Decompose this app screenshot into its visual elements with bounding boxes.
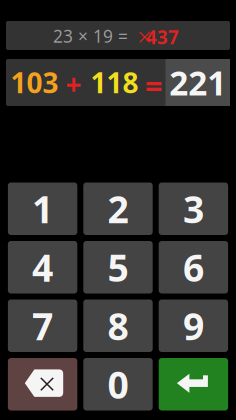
staticText: +	[65, 65, 81, 103]
button[interactable]: Delete	[8, 358, 77, 410]
button[interactable]: 4	[8, 241, 77, 293]
button[interactable]: 7	[8, 299, 77, 352]
staticText: 5	[107, 242, 128, 292]
button[interactable]: 0	[83, 358, 153, 410]
staticText: =	[145, 65, 163, 105]
staticText: 8	[107, 301, 128, 351]
staticText: 4	[32, 242, 53, 292]
staticText: 23 × 19 =	[53, 24, 128, 47]
button[interactable]: Enter	[159, 358, 228, 410]
staticText: 1	[32, 184, 53, 234]
button[interactable]: 3	[159, 182, 228, 235]
staticText: 118	[90, 64, 138, 101]
button[interactable]: 9	[159, 299, 228, 352]
staticText: 7	[32, 301, 53, 351]
button[interactable]: 6	[159, 241, 228, 293]
staticText: ×	[137, 20, 151, 53]
button[interactable]: 8	[83, 299, 153, 352]
staticText: 3	[183, 184, 204, 234]
staticText: 0	[107, 359, 128, 409]
button[interactable]: 5	[83, 241, 153, 293]
staticText: 9	[183, 301, 204, 351]
staticText: 103	[10, 64, 58, 101]
button[interactable]: 1	[8, 182, 77, 235]
button[interactable]: 2	[83, 182, 153, 235]
staticText: 221	[169, 60, 226, 105]
staticText: 437	[146, 25, 179, 49]
staticText: 2	[107, 184, 128, 234]
staticText: 6	[183, 242, 204, 292]
